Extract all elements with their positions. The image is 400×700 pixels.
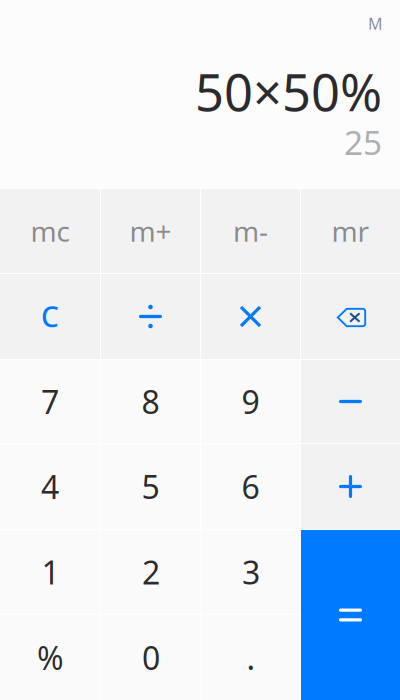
staticText: 8: [141, 380, 159, 423]
staticText: 9: [241, 380, 259, 423]
staticText: 6: [241, 465, 259, 508]
staticText: 7: [41, 380, 59, 423]
staticText: 0: [142, 636, 160, 679]
button[interactable]: 2: [101, 530, 200, 614]
button[interactable]: Minus: [301, 360, 400, 443]
button[interactable]: Equals: [301, 530, 400, 700]
button[interactable]: %: [0, 615, 100, 700]
button[interactable]: 5: [101, 444, 200, 529]
button[interactable]: Divide: [101, 274, 200, 359]
button[interactable]: Backspace: [301, 274, 400, 359]
staticText: 50×50%: [195, 58, 382, 125]
staticText: 3: [242, 551, 260, 593]
staticText: mr: [331, 212, 369, 250]
button[interactable]: 4: [0, 444, 100, 529]
staticText: 5: [141, 465, 159, 508]
staticText: .: [246, 636, 255, 679]
staticText: %: [37, 636, 64, 679]
button[interactable]: 7: [0, 360, 100, 443]
button[interactable]: m+: [101, 189, 200, 273]
staticText: m-: [233, 212, 268, 250]
staticText: m+: [129, 212, 171, 250]
button[interactable]: m-: [201, 189, 300, 273]
button[interactable]: 3: [201, 530, 300, 614]
button[interactable]: Multiply: [201, 274, 300, 359]
button[interactable]: .: [201, 615, 300, 700]
staticText: 1: [41, 551, 59, 593]
staticText: C: [41, 298, 59, 335]
button[interactable]: mr: [301, 189, 400, 273]
button[interactable]: 8: [101, 360, 200, 443]
button[interactable]: 6: [201, 444, 300, 529]
staticText: 2: [142, 551, 160, 593]
button[interactable]: 9: [201, 360, 300, 443]
staticText: mc: [30, 212, 69, 250]
staticText: M: [368, 13, 383, 34]
button[interactable]: 0: [101, 615, 200, 700]
button[interactable]: Plus: [301, 444, 400, 529]
button[interactable]: mc: [0, 189, 100, 273]
staticText: 4: [41, 465, 59, 508]
staticText: 25: [344, 120, 382, 164]
button[interactable]: 1: [0, 530, 100, 614]
button[interactable]: C: [0, 274, 100, 359]
